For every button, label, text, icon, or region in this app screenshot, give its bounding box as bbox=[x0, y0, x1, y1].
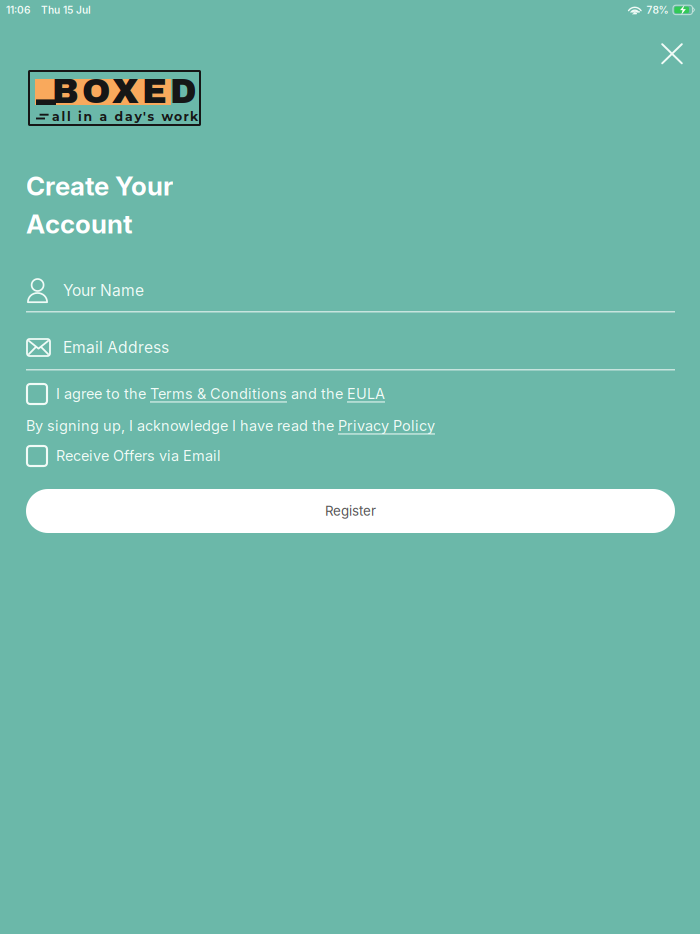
button[interactable]: Email Address bbox=[26, 333, 675, 377]
staticText: Register bbox=[325, 503, 376, 519]
staticText: Thu 15 Jul bbox=[41, 4, 91, 16]
staticText: 78% bbox=[646, 4, 668, 16]
staticText: Your Name bbox=[63, 281, 144, 300]
staticText: By signing up, I acknowledge I have read… bbox=[26, 417, 435, 434]
staticText: 11:06 bbox=[6, 4, 30, 16]
staticText: Receive Offers via Email bbox=[56, 447, 221, 464]
staticText: Account bbox=[26, 208, 133, 240]
button[interactable]: Receive Offers via Email bbox=[26, 446, 675, 466]
staticText: I agree to the Terms & Conditions and th… bbox=[56, 385, 385, 402]
staticText: all in a day's work bbox=[52, 109, 198, 124]
staticText: Create Your bbox=[26, 170, 173, 202]
button[interactable]: Your Name bbox=[26, 275, 675, 319]
staticText: Email Address bbox=[63, 338, 169, 357]
staticText: BOXED bbox=[52, 73, 197, 110]
button[interactable]: Register bbox=[26, 489, 675, 533]
button[interactable]: I agree to the Terms & Conditions and th… bbox=[26, 384, 675, 404]
button[interactable]: Close bbox=[650, 32, 694, 75]
